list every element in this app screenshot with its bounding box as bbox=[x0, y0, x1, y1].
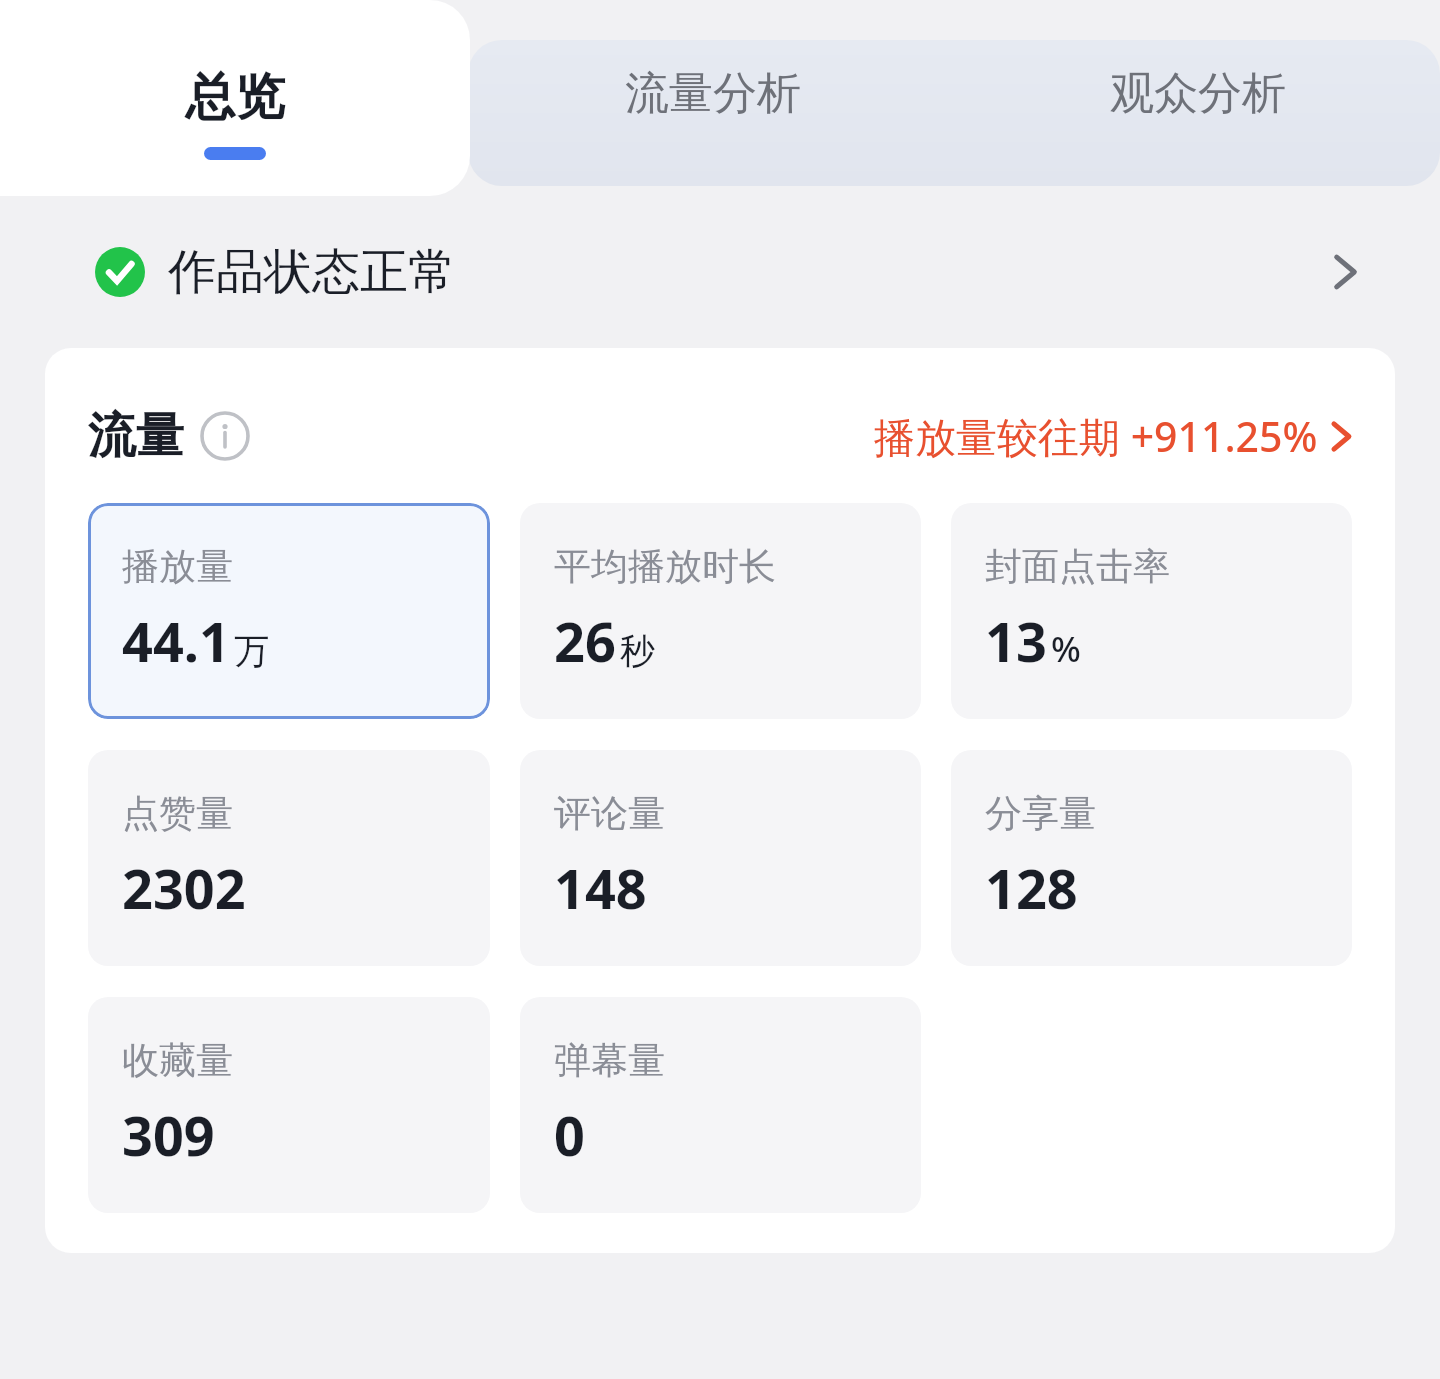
button[interactable]: 流量分析 bbox=[470, 0, 955, 186]
staticText: 流量分析 bbox=[625, 66, 801, 121]
staticText: 0 bbox=[554, 1098, 585, 1172]
button[interactable]: 播放量 bbox=[88, 503, 490, 719]
staticText: 平均播放时长 bbox=[554, 543, 776, 590]
button[interactable]: 分享量 bbox=[951, 750, 1352, 966]
button[interactable]: 作品状态正常 bbox=[0, 196, 1440, 348]
button[interactable]: 评论量 bbox=[520, 750, 921, 966]
staticText: 2302 bbox=[122, 851, 246, 925]
staticText: 309 bbox=[122, 1098, 215, 1172]
staticText: 评论量 bbox=[554, 790, 665, 837]
button[interactable]: 观众分析 bbox=[955, 0, 1440, 186]
staticText: 播放量 bbox=[122, 543, 233, 590]
staticText: 148 bbox=[554, 851, 647, 925]
staticText: 观众分析 bbox=[1110, 66, 1286, 121]
staticText: 播放量较往期 +911.25% bbox=[874, 408, 1318, 464]
button[interactable]: 说明 bbox=[199, 410, 251, 462]
staticText: 收藏量 bbox=[122, 1037, 233, 1084]
staticText: % bbox=[1051, 625, 1081, 673]
button[interactable]: 播放量较往期 +911.25% bbox=[874, 408, 1352, 464]
button[interactable]: 总览 bbox=[0, 0, 470, 196]
staticText: 秒 bbox=[620, 629, 655, 673]
button[interactable]: 平均播放时长 bbox=[520, 503, 921, 719]
button[interactable]: 封面点击率 bbox=[951, 503, 1352, 719]
staticText: 128 bbox=[985, 851, 1078, 925]
button[interactable]: 弹幕量 bbox=[520, 997, 921, 1213]
staticText: 26 bbox=[554, 604, 616, 678]
button[interactable]: 点赞量 bbox=[88, 750, 490, 966]
staticText: 总览 bbox=[185, 66, 285, 129]
staticText: 分享量 bbox=[985, 790, 1096, 837]
staticText: 封面点击率 bbox=[985, 543, 1170, 590]
staticText: 弹幕量 bbox=[554, 1037, 665, 1084]
staticText: 13 bbox=[985, 604, 1047, 678]
staticText: 万 bbox=[234, 629, 269, 673]
button[interactable]: 收藏量 bbox=[88, 997, 490, 1213]
staticText: 44.1 bbox=[122, 604, 230, 678]
staticText: 作品状态正常 bbox=[168, 242, 456, 302]
staticText: 点赞量 bbox=[122, 790, 233, 837]
staticText: 流量 bbox=[88, 406, 184, 466]
